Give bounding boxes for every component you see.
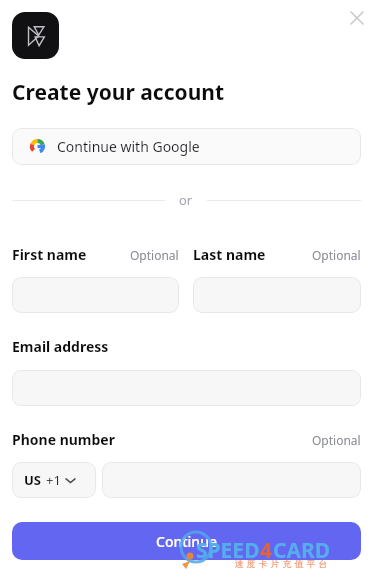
button[interactable]: Continue with Google xyxy=(12,128,361,165)
staticText: Create your account xyxy=(12,78,225,107)
staticText: 速度卡片充值平台 xyxy=(200,558,365,569)
staticText: +1 xyxy=(46,471,61,489)
button[interactable] xyxy=(193,277,361,313)
button[interactable] xyxy=(12,370,361,406)
button[interactable] xyxy=(102,462,361,498)
staticText: Last name xyxy=(193,245,266,264)
staticText: Optional xyxy=(312,432,361,448)
button[interactable]: App logo xyxy=(12,12,59,59)
staticText: Phone number xyxy=(12,430,115,449)
staticText: US xyxy=(24,471,41,489)
staticText: SPEED xyxy=(196,536,260,565)
staticText: First name xyxy=(12,245,87,264)
staticText: Optional xyxy=(130,247,179,263)
button[interactable]: Close xyxy=(341,2,373,34)
staticText: CARD xyxy=(273,536,331,565)
button[interactable]: Continue xyxy=(12,522,361,560)
staticText: Continue with Google xyxy=(57,137,200,156)
button[interactable] xyxy=(12,277,179,313)
staticText: or xyxy=(179,191,193,209)
staticText: Email address xyxy=(12,337,109,356)
staticText: Optional xyxy=(312,247,361,263)
button[interactable]: US xyxy=(12,462,96,498)
staticText: 4 xyxy=(260,536,273,565)
staticText: Continue xyxy=(156,532,217,551)
